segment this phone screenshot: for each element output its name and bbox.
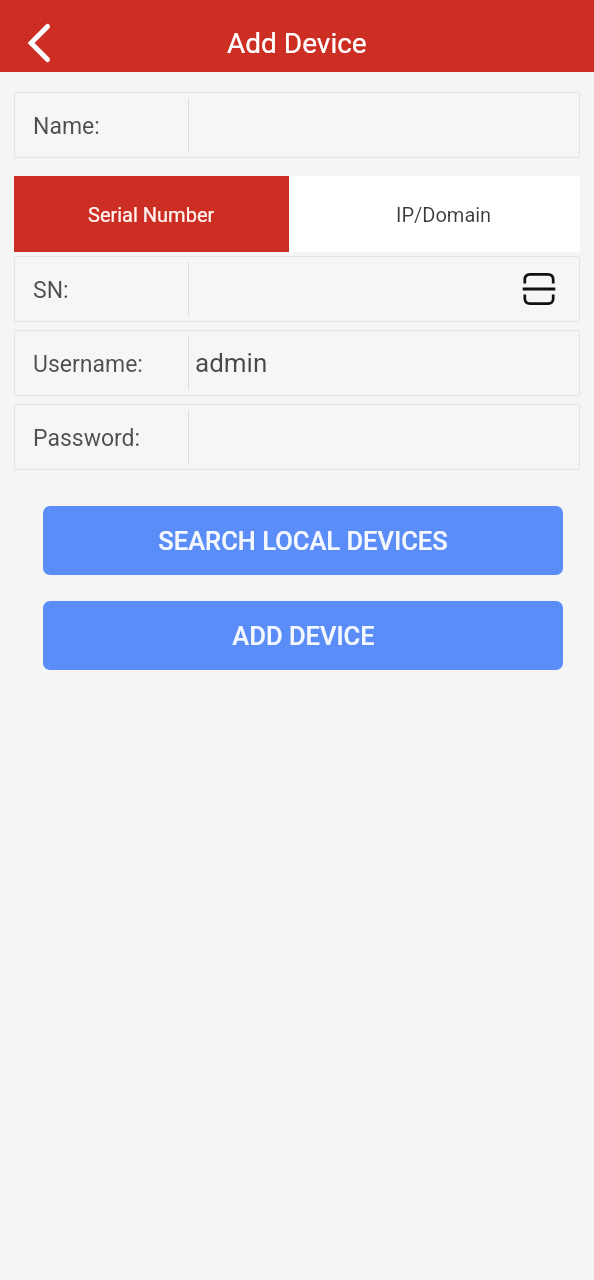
staticText: Serial Number	[88, 203, 215, 226]
button[interactable]: Password:	[14, 404, 580, 470]
staticText: admin	[195, 348, 268, 378]
button[interactable]: Serial Number	[14, 176, 289, 252]
staticText: SN:	[33, 277, 69, 304]
button[interactable]: SEARCH LOCAL DEVICES	[43, 506, 563, 575]
button[interactable]: IP/Domain	[289, 176, 580, 252]
button[interactable]: SN:	[14, 256, 580, 322]
staticText: Username:	[33, 351, 143, 378]
staticText: Name:	[33, 113, 100, 140]
staticText: ADD DEVICE	[232, 621, 375, 651]
staticText: SEARCH LOCAL DEVICES	[158, 526, 448, 556]
staticText: Password:	[33, 425, 141, 452]
button[interactable]: Username:	[14, 330, 580, 396]
button[interactable]: Name:	[14, 92, 580, 158]
button[interactable]: ADD DEVICE	[43, 601, 563, 670]
staticText: Add Device	[227, 27, 367, 60]
button[interactable]: Back	[13, 20, 65, 66]
button[interactable]: Scan serial number	[517, 269, 561, 309]
staticText: IP/Domain	[396, 203, 492, 226]
